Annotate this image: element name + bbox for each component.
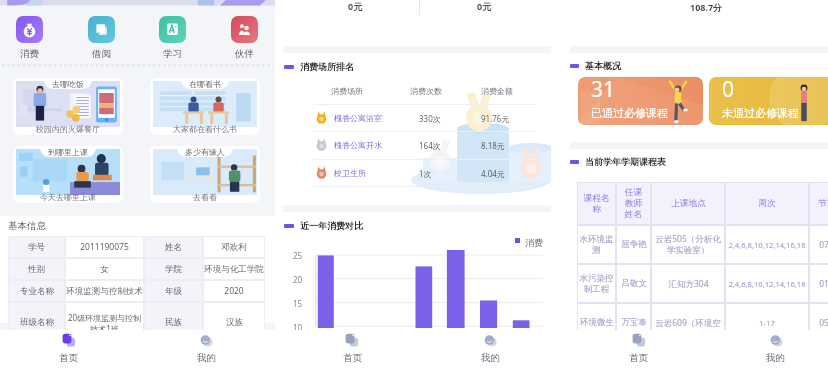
staticText: 10 <box>293 322 303 333</box>
staticText: 学号 <box>28 242 45 253</box>
button[interactable]: 多少有缘人 <box>150 146 260 203</box>
staticText: 0 <box>722 77 735 104</box>
staticText: 91.76元 <box>481 113 510 124</box>
button[interactable]: 学习 <box>159 16 186 60</box>
staticText: 基本信息 <box>8 220 46 232</box>
staticText: 课程名称 <box>580 193 613 215</box>
staticText: 去哪吃饭 <box>52 79 84 89</box>
button[interactable]: 0 <box>709 77 828 125</box>
staticText: 近一年消费对比 <box>300 220 363 231</box>
staticText: 专业名称 <box>20 286 54 297</box>
button[interactable]: 我的 <box>421 330 551 374</box>
staticText: 女 <box>100 264 109 275</box>
staticText: 校园内的火爆餐厅 <box>36 124 100 134</box>
staticText: 164次 <box>419 140 441 151</box>
staticText: 大家都在看什么书 <box>173 124 237 134</box>
staticText: 8.18元 <box>481 140 505 151</box>
staticText: 2011190075 <box>80 241 129 253</box>
staticText: 今天去哪里上课 <box>40 192 96 202</box>
staticText: 20级环境监测与控制技术1班 <box>66 312 143 334</box>
button[interactable]: 伙伴 <box>231 16 258 60</box>
staticText: 108.7分 <box>690 1 723 13</box>
staticText: 基本概况 <box>585 60 621 71</box>
staticText: 我的 <box>766 352 785 364</box>
staticText: 330次 <box>419 113 441 124</box>
staticText: 借阅 <box>92 48 111 60</box>
staticText: 水环境监测 <box>579 234 614 256</box>
button[interactable]: 首页 <box>0 330 137 374</box>
staticText: 25 <box>293 250 303 261</box>
staticText: 环境微生 <box>580 317 614 328</box>
staticText: 万宝泰 <box>621 317 647 328</box>
staticText: 消费场所排名 <box>300 61 354 72</box>
staticText: 15 <box>293 298 303 309</box>
staticText: 20 <box>293 274 303 285</box>
button[interactable]: 我的 <box>707 330 828 374</box>
staticText: 上课地点 <box>671 198 706 209</box>
staticText: 消费金额 <box>481 86 513 96</box>
staticText: 云岩505（分析化学实验室） <box>653 233 723 256</box>
staticText: 任课教师姓名 <box>623 187 644 220</box>
staticText: 学习 <box>163 48 182 60</box>
staticText: 校卫生所 <box>334 168 366 178</box>
staticText: 环境与化工学院 <box>204 264 264 275</box>
button[interactable]: 31 <box>578 77 703 125</box>
staticText: 多少有缘人 <box>185 147 225 157</box>
staticText: 年级 <box>165 286 182 297</box>
staticText: 水污染控制工程 <box>579 273 614 295</box>
staticText: 已通过必修课程 <box>591 106 668 120</box>
staticText: 去看看 <box>193 192 217 202</box>
button[interactable]: 首页 <box>570 330 707 374</box>
staticText: 在哪看书 <box>189 79 221 89</box>
staticText: 姓名 <box>165 242 182 253</box>
staticText: 消费 <box>20 48 39 60</box>
staticText: 当前学年学期课程表 <box>585 156 666 167</box>
button[interactable]: 首页 <box>283 330 421 374</box>
staticText: 2,4,6,8,10,12,14,16,18 <box>728 279 806 289</box>
staticText: 性别 <box>28 264 45 275</box>
staticText: 1次 <box>419 168 432 179</box>
staticText: 首页 <box>59 352 78 364</box>
staticText: 节次 <box>818 198 828 209</box>
staticText: 环境监测与控制技术 <box>66 286 143 297</box>
staticText: 050 <box>819 317 828 329</box>
staticText: 汇知方304 <box>668 278 709 290</box>
staticText: 我的 <box>197 352 216 364</box>
staticText: 2020 <box>224 285 244 297</box>
staticText: 学院 <box>165 264 182 275</box>
staticText: 首页 <box>629 352 648 364</box>
staticText: 班级名称 <box>20 317 54 328</box>
staticText: 我的 <box>481 352 500 364</box>
staticText: 消费 <box>525 237 543 248</box>
staticText: 消费次数 <box>410 86 442 96</box>
staticText: 首页 <box>343 352 362 364</box>
staticText: 槐香公寓开水 <box>334 140 382 150</box>
staticText: 吕敬文 <box>621 278 647 289</box>
staticText: 4.04元 <box>481 168 505 179</box>
button[interactable]: 消费 <box>16 16 43 60</box>
staticText: 周次 <box>758 198 776 209</box>
staticText: 屈争艳 <box>621 239 647 250</box>
button[interactable]: 我的 <box>137 330 275 374</box>
staticText: 汉族 <box>226 317 243 328</box>
staticText: 未通过必修课程 <box>722 106 799 120</box>
staticText: 邓欢利 <box>221 242 247 253</box>
button[interactable]: 去哪吃饭 <box>13 78 123 135</box>
button[interactable]: 在哪看书 <box>150 78 260 135</box>
staticText: 0元 <box>477 0 492 12</box>
staticText: 民族 <box>165 317 182 328</box>
staticText: 槐香公寓浴室 <box>334 113 382 123</box>
staticText: 云岩609（环境空 <box>655 317 721 329</box>
staticText: 1-17 <box>759 318 775 328</box>
staticText: 010 <box>819 278 828 290</box>
staticText: 070 <box>819 239 828 251</box>
button[interactable]: 借阅 <box>88 16 115 60</box>
staticText: 31 <box>591 77 616 104</box>
staticText: 到哪里上课 <box>48 147 88 157</box>
staticText: 消费场所 <box>331 86 363 96</box>
staticText: 0元 <box>348 0 363 12</box>
button[interactable]: 到哪里上课 <box>13 146 123 203</box>
staticText: 2,4,6,8,10,12,14,16,18 <box>728 240 806 250</box>
staticText: 伙伴 <box>235 48 254 60</box>
